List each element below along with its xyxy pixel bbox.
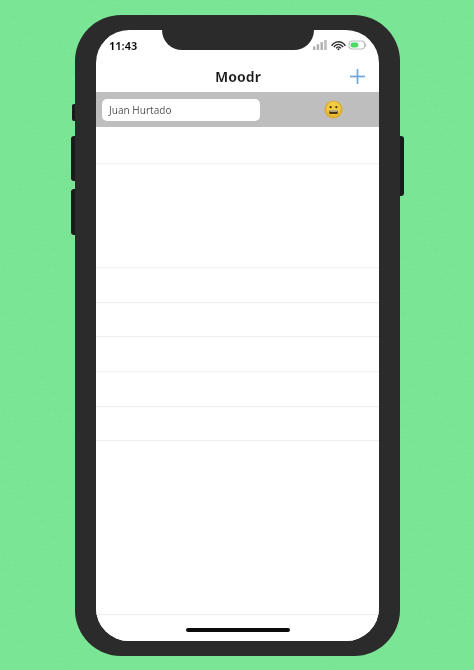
button[interactable]: Juan Hurtado [96,92,379,127]
staticText: Moodr [215,67,261,86]
staticText: Juan Hurtado [109,103,172,117]
button[interactable]: Mood: happy [325,101,342,118]
staticText: 11:43 [109,38,138,53]
button[interactable]: Add mood entry [343,62,371,90]
